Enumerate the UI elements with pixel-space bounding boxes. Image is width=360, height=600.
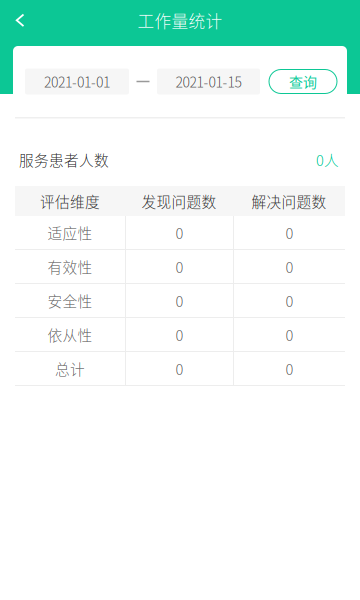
staticText: 适应性 bbox=[47, 222, 92, 243]
staticText: 依从性 bbox=[47, 324, 92, 345]
staticText: 0 bbox=[285, 358, 293, 379]
staticText: 0 bbox=[285, 256, 293, 277]
staticText: 0 bbox=[175, 290, 183, 311]
staticText: 0 bbox=[285, 290, 293, 311]
staticText: 发现问题数 bbox=[141, 190, 216, 212]
staticText: 0 bbox=[175, 358, 183, 379]
staticText: 0 bbox=[175, 256, 183, 277]
staticText: 0 bbox=[175, 324, 183, 345]
staticText: 0 bbox=[285, 222, 293, 243]
staticText: 工作量统计 bbox=[137, 8, 222, 32]
staticText: 安全性 bbox=[47, 290, 92, 311]
staticText: 2021-01-01 bbox=[44, 71, 110, 92]
button[interactable]: 查询 bbox=[269, 69, 337, 93]
button[interactable]: Back bbox=[0, 0, 40, 40]
staticText: 评估维度 bbox=[40, 190, 100, 212]
staticText: 0人 bbox=[316, 149, 339, 170]
staticText: 服务患者人数 bbox=[19, 149, 109, 170]
staticText: 查询 bbox=[289, 71, 317, 92]
staticText: 0 bbox=[285, 324, 293, 345]
staticText: 有效性 bbox=[47, 256, 92, 277]
button[interactable]: End date bbox=[157, 68, 260, 94]
button[interactable]: Start date bbox=[25, 68, 129, 94]
staticText: 总计 bbox=[55, 358, 85, 379]
staticText: 解决问题数 bbox=[251, 190, 326, 212]
staticText: 0 bbox=[175, 222, 183, 243]
staticText: 2021-01-15 bbox=[175, 71, 241, 92]
